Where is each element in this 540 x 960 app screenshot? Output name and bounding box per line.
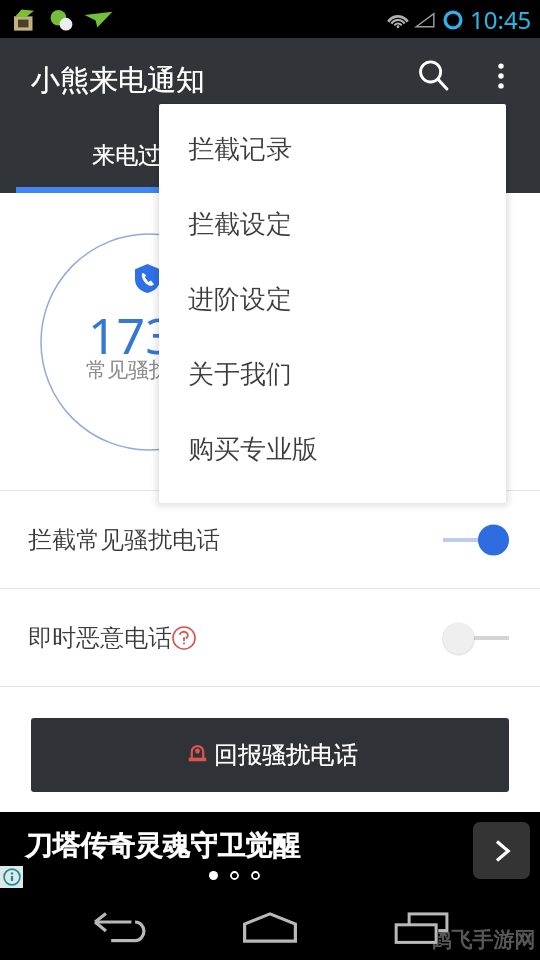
staticText: 小熊来电通知 bbox=[31, 62, 205, 99]
button[interactable]: Next bbox=[473, 822, 530, 879]
staticText: 鹤飞手游网 bbox=[430, 927, 535, 953]
button[interactable]: 关于我们 bbox=[159, 337, 506, 412]
button[interactable]: 拦截记录 bbox=[159, 112, 506, 187]
staticText: 回报骚扰电话 bbox=[214, 740, 358, 770]
staticText: 进阶设定 bbox=[188, 283, 292, 316]
button[interactable]: Ad info bbox=[0, 866, 23, 888]
staticText: 173 bbox=[88, 301, 174, 369]
button[interactable]: Back bbox=[85, 895, 155, 960]
button[interactable]: 购买专业版 bbox=[159, 412, 506, 487]
staticText: 拦截常见骚扰电话 bbox=[28, 525, 220, 555]
staticText: 常见骚扰号码 bbox=[86, 357, 212, 383]
button[interactable]: 拦截常见骚扰电话 bbox=[0, 491, 540, 588]
staticText: 即时恶意电话 bbox=[28, 623, 172, 653]
staticText: 刀塔传奇灵魂守卫觉醒 bbox=[25, 829, 300, 864]
staticText: 购买专业版 bbox=[188, 433, 318, 466]
button[interactable]: More options bbox=[475, 38, 527, 114]
button[interactable]: 即时恶意电话 bbox=[0, 589, 540, 686]
button[interactable]: Home bbox=[235, 895, 305, 960]
button[interactable]: Recents bbox=[386, 895, 456, 960]
staticText: 来电过滤 bbox=[92, 141, 184, 170]
button[interactable]: 拦截设定 bbox=[159, 187, 506, 262]
button[interactable]: 进阶设定 bbox=[159, 262, 506, 337]
staticText: 10:45 bbox=[470, 3, 532, 36]
staticText: 拦截记录 bbox=[188, 133, 292, 166]
button[interactable]: Search bbox=[406, 38, 462, 114]
staticText: 拦截设定 bbox=[188, 208, 292, 241]
button[interactable]: 来电过滤 bbox=[0, 114, 270, 193]
button[interactable]: 拦截记录 bbox=[270, 114, 540, 193]
button[interactable]: 回报骚扰电话 bbox=[31, 718, 509, 792]
staticText: 关于我们 bbox=[188, 358, 292, 391]
